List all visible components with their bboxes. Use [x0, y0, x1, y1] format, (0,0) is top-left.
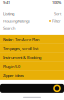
staticText: Sort	[54, 11, 61, 16]
staticText: Filter	[52, 18, 61, 24]
staticText: Search	[3, 26, 15, 31]
staticText: Ten pages, scroll list	[3, 46, 38, 51]
staticText: Plug-in 5.0	[3, 64, 20, 69]
staticText: Listing	[3, 11, 14, 16]
staticText: Instrument & Booking	[3, 55, 41, 60]
button[interactable]: Instrument & Booking	[0, 53, 64, 62]
staticText: 100%	[52, 0, 61, 5]
staticText: Housing/Ratings	[3, 18, 30, 24]
button[interactable]: Zipper ideas	[0, 71, 64, 80]
staticText: Zipper ideas	[3, 73, 24, 78]
button[interactable]: Radar: Ten Acre Plan	[0, 35, 64, 44]
button[interactable]: Ten pages, scroll list	[0, 44, 64, 53]
staticText: 9:41	[3, 0, 10, 5]
button[interactable]: Record	[54, 85, 64, 91]
staticText: Radar: Ten Acre Plan	[3, 37, 39, 42]
button[interactable]: Plug-in 5.0	[0, 62, 64, 71]
